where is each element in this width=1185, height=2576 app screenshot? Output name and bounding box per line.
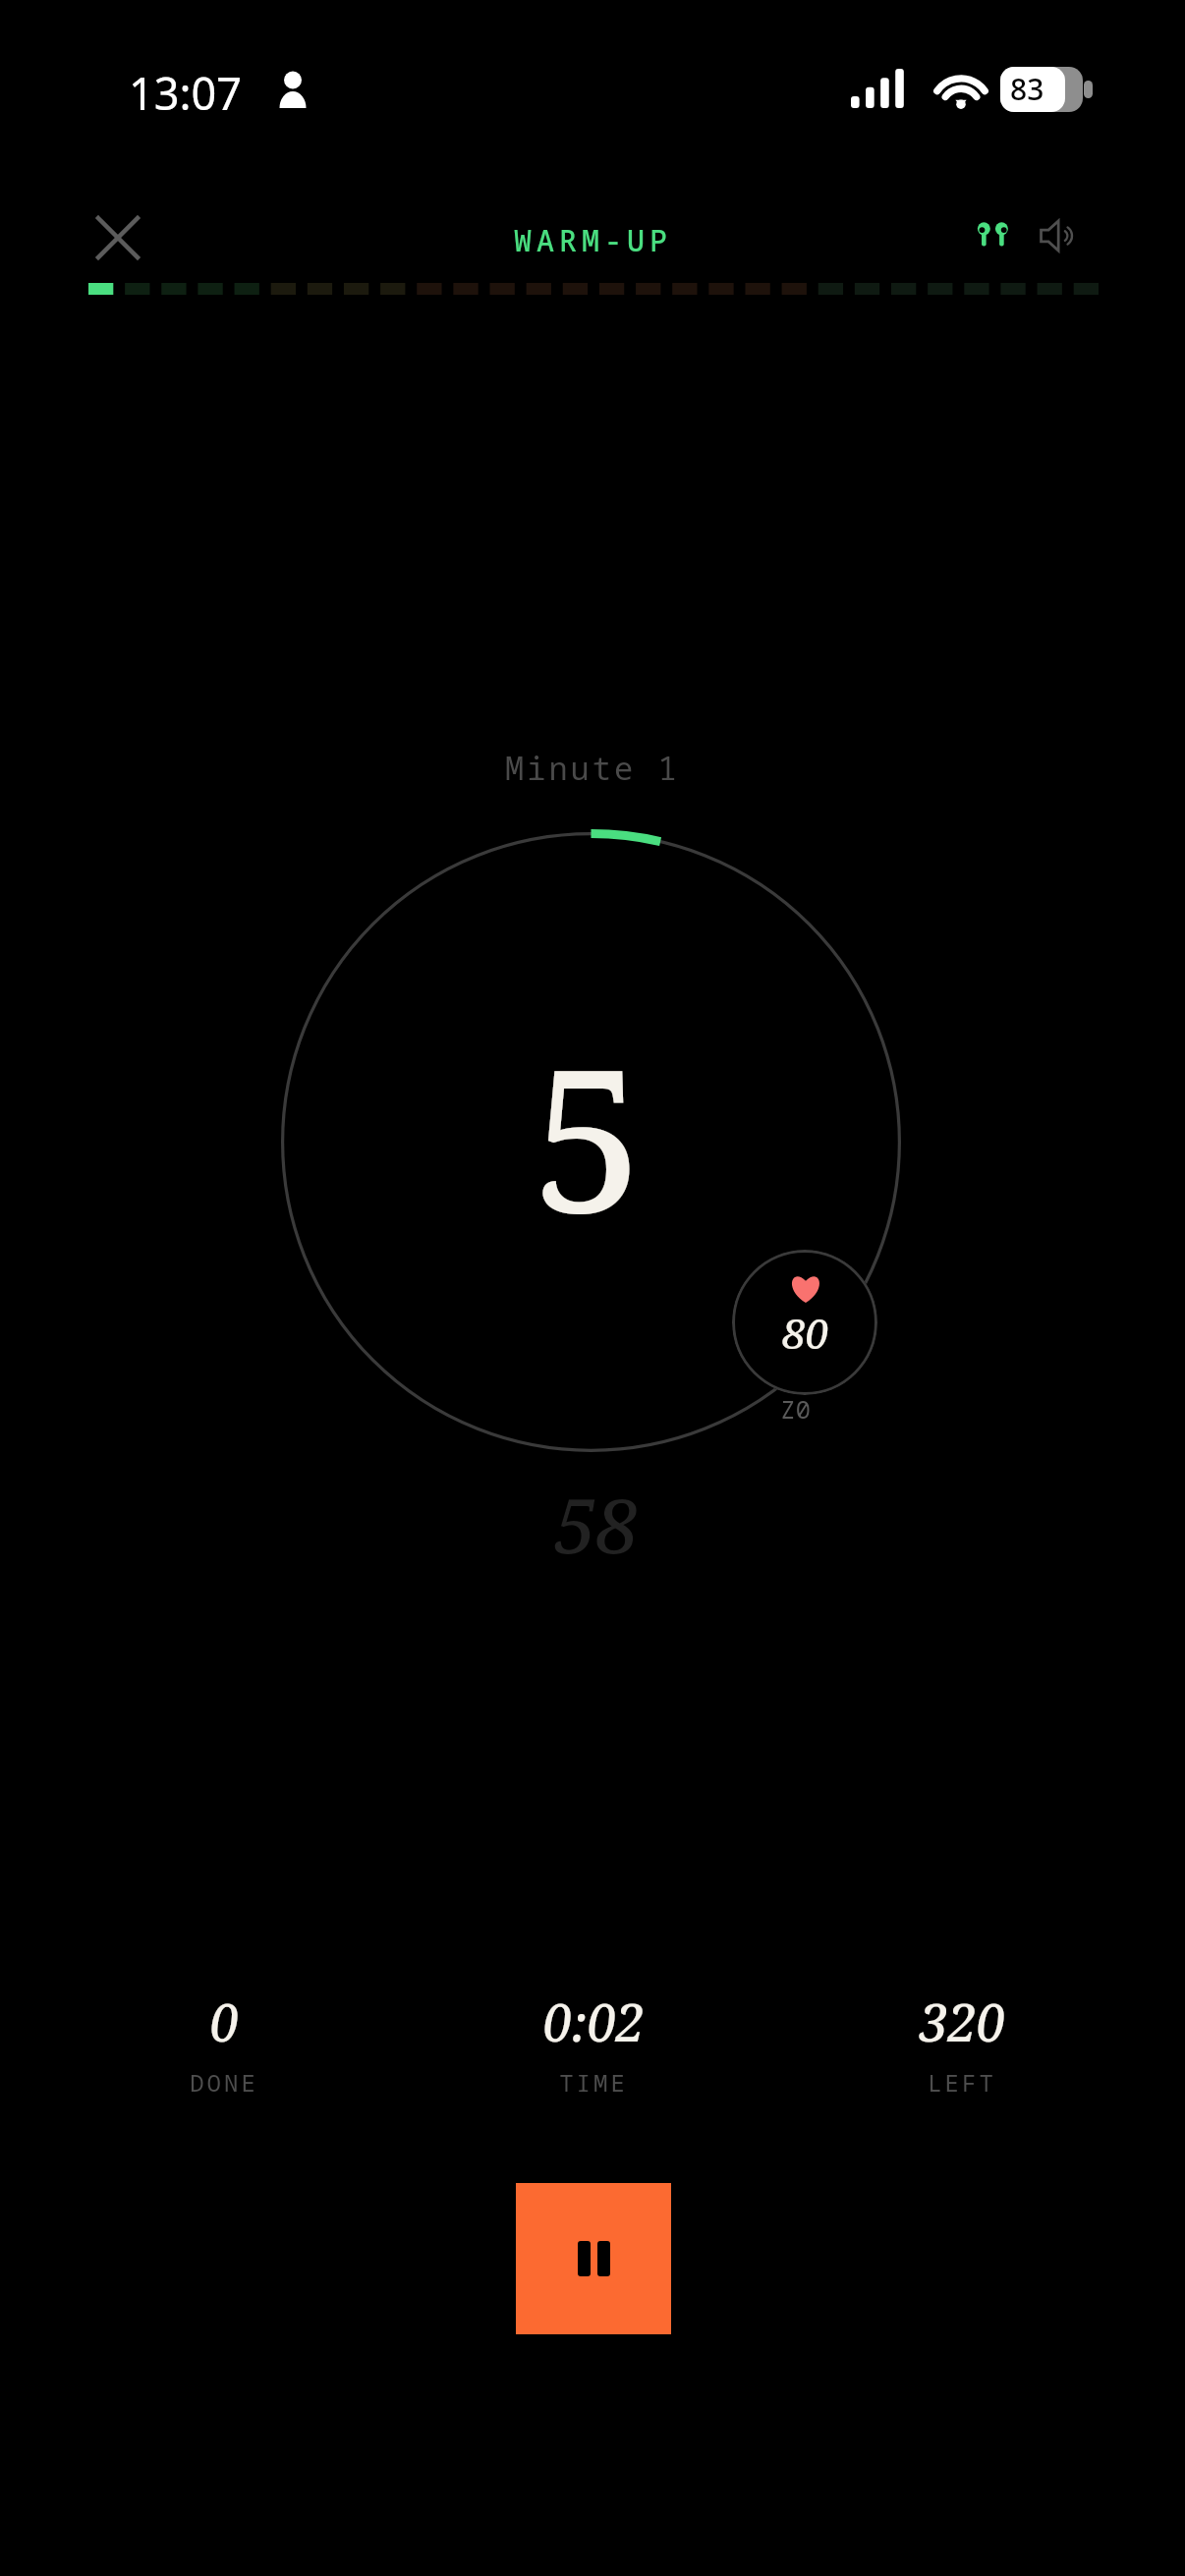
staticText: 13:07 [129,63,243,123]
button[interactable]: Pause [516,2183,671,2334]
staticText: LEFT [928,2066,996,2099]
button[interactable]: Audio device [958,200,1029,271]
staticText: Minute 1 [505,747,680,790]
staticText: 0:02 [542,1987,645,2056]
staticText: 320 [919,1987,1005,2056]
button[interactable]: Volume [1024,200,1095,271]
staticText: 58 [554,1474,638,1576]
staticText: 5 [533,1002,644,1269]
staticText: 80 [782,1305,828,1361]
button[interactable]: 0:02 [409,1987,777,2099]
button[interactable]: 80 [732,1250,877,1395]
button[interactable]: Close [77,196,159,279]
staticText: 83 [1010,69,1044,109]
staticText: DONE [190,2066,258,2099]
button[interactable]: 0 [39,1987,409,2099]
staticText: TIME [559,2066,628,2099]
staticText: Z0 [780,1391,812,1426]
staticText: WARM-UP [514,220,672,260]
button[interactable]: 320 [777,1987,1146,2099]
staticText: 0 [209,1987,239,2056]
